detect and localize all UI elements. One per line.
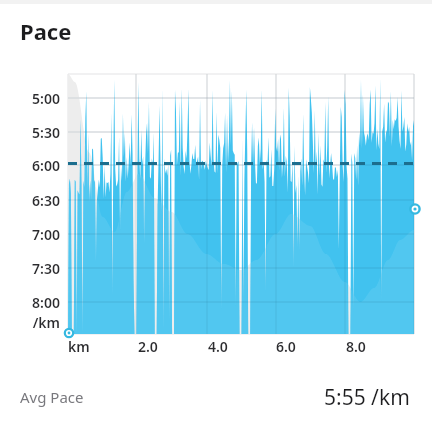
staticText: km — [68, 337, 90, 356]
staticText: 4.0 — [208, 337, 228, 356]
staticText: Avg Pace — [20, 387, 84, 407]
staticText: 5:00 — [10, 89, 60, 108]
staticText: Pace — [20, 16, 72, 46]
staticText: 7:30 — [10, 259, 60, 278]
staticText: 8:00 — [10, 293, 60, 312]
staticText: 8.0 — [346, 337, 366, 356]
staticText: 6:30 — [10, 191, 60, 210]
staticText: 6:00 — [10, 156, 60, 175]
staticText: /km — [10, 313, 60, 332]
staticText: 5:55 /km — [324, 383, 410, 412]
staticText: 2.0 — [138, 337, 158, 356]
button[interactable]: Pace chart — [0, 52, 432, 342]
staticText: 5:30 — [10, 123, 60, 142]
staticText: 6.0 — [276, 337, 296, 356]
button[interactable]: Avg Pace — [0, 366, 432, 428]
staticText: 7:00 — [10, 225, 60, 244]
